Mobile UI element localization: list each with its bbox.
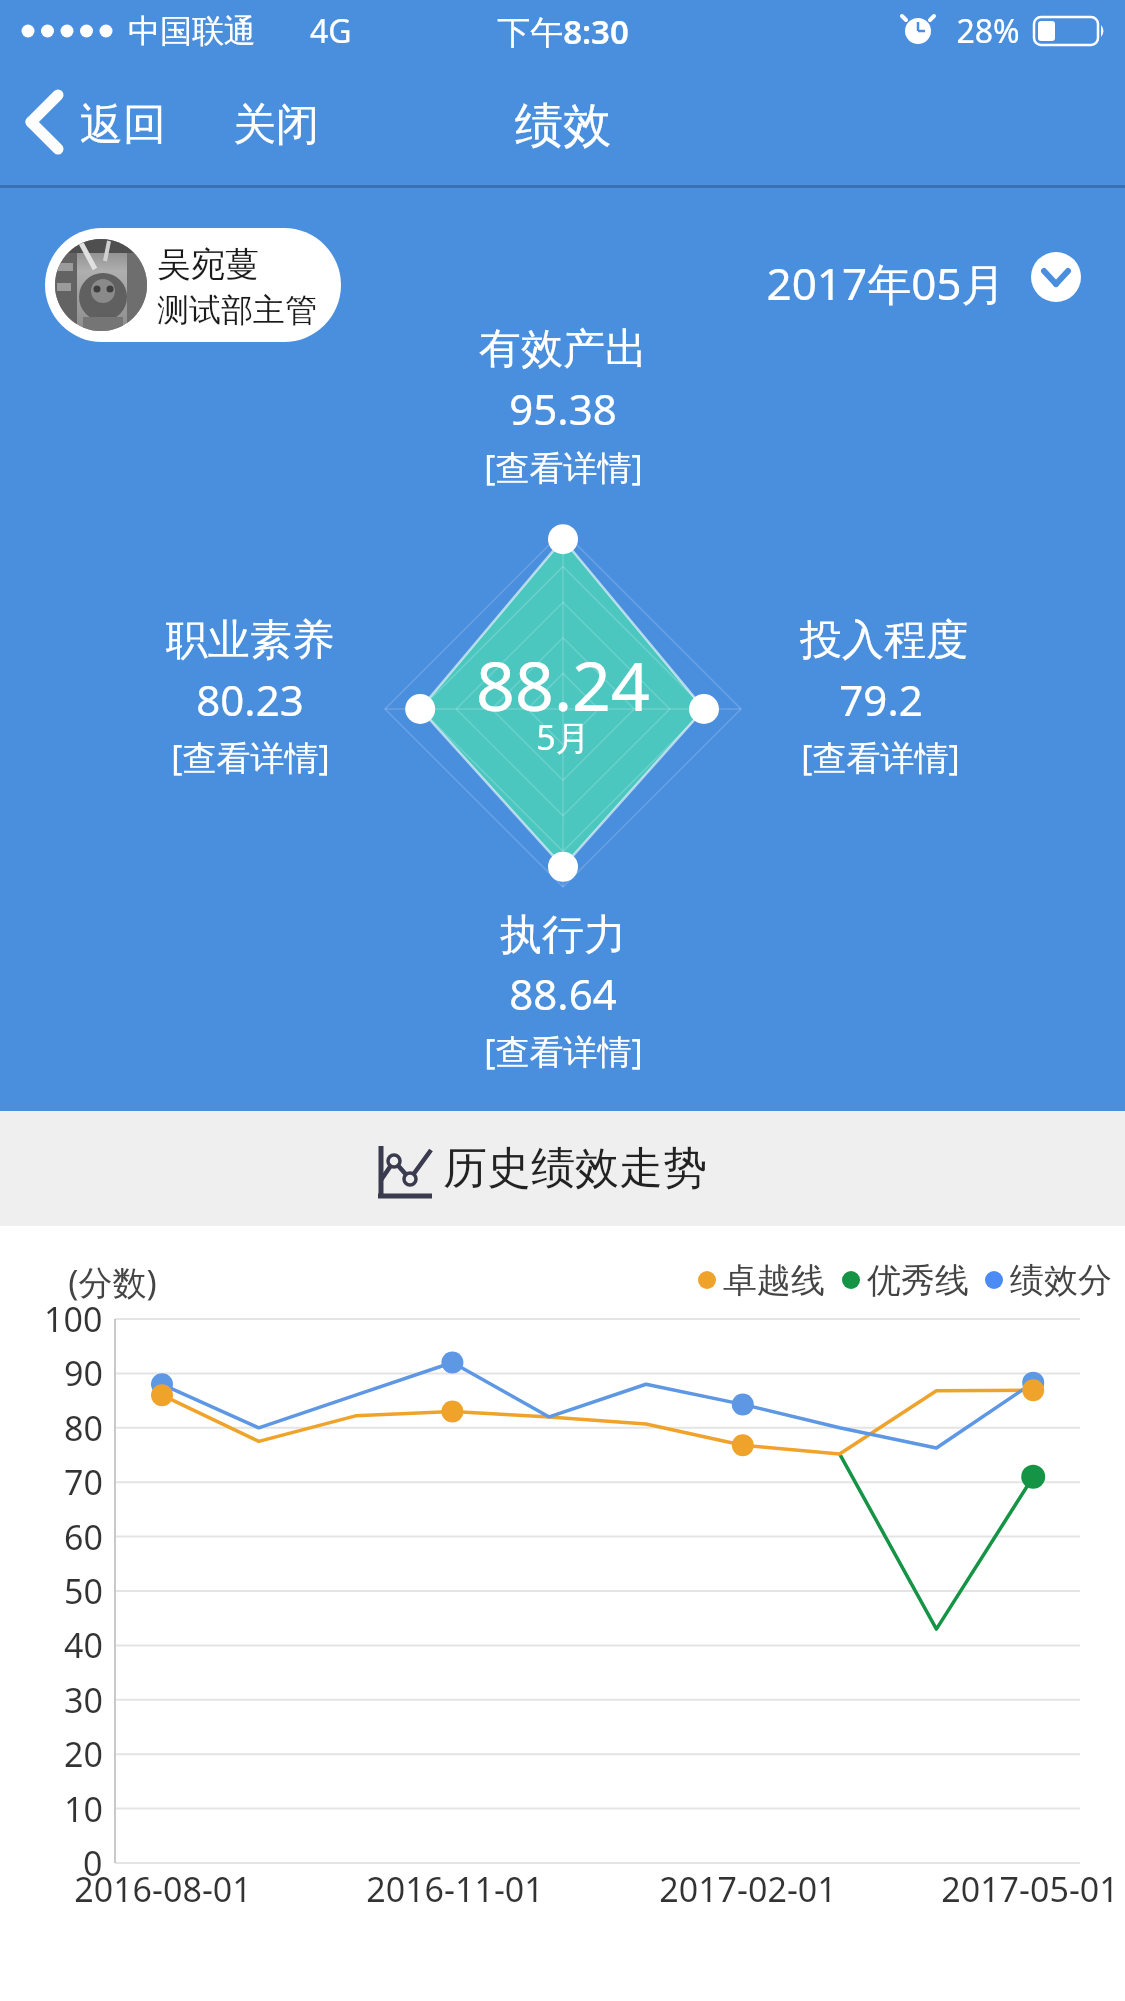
staticText: 历史绩效走势	[443, 1141, 707, 1196]
button[interactable]	[760, 240, 1100, 330]
staticText: (分数)	[68, 1259, 157, 1305]
staticText: 80	[64, 1405, 103, 1451]
staticText: 绩效分	[1010, 1259, 1112, 1302]
staticText: 88.24	[476, 638, 650, 731]
staticText: 100	[44, 1296, 103, 1342]
staticText: 70	[64, 1459, 103, 1505]
staticText: 2016-08-01	[74, 1866, 252, 1912]
staticText: 测试部主管	[157, 290, 317, 330]
staticText: 关闭	[233, 98, 319, 152]
staticText: 有效产出	[479, 323, 647, 376]
staticText: 5月	[536, 714, 590, 760]
staticText: 投入程度	[800, 614, 968, 667]
staticText: 绩效	[515, 96, 611, 156]
staticText: 吴宛蔓	[157, 243, 259, 286]
staticText: 28%	[956, 9, 1020, 53]
button[interactable]: 吴宛蔓	[45, 228, 341, 342]
staticText: [查看详情]	[484, 1028, 643, 1074]
staticText: 2017-05-01	[941, 1866, 1119, 1912]
staticText: 30	[64, 1677, 103, 1723]
staticText: 90	[64, 1350, 103, 1396]
button[interactable]: [查看详情]	[145, 730, 355, 784]
button[interactable]	[20, 90, 180, 156]
staticText: [查看详情]	[484, 444, 643, 490]
staticText: 下午8:30	[497, 9, 629, 54]
staticText: 50	[64, 1568, 103, 1614]
staticText: 10	[64, 1786, 103, 1832]
staticText: 2017年05月	[766, 253, 1006, 313]
button[interactable]: [查看详情]	[458, 440, 668, 494]
button[interactable]	[225, 90, 330, 156]
button[interactable]: [查看详情]	[458, 1024, 668, 1078]
staticText: 2017-02-01	[659, 1866, 837, 1912]
staticText: 执行力	[500, 909, 626, 962]
staticText: 中国联通	[128, 11, 256, 51]
staticText: 79.2	[839, 671, 923, 728]
staticText: 60	[64, 1514, 103, 1560]
staticText: 20	[64, 1731, 103, 1777]
staticText: 95.38	[509, 380, 617, 437]
staticText: 优秀线	[867, 1259, 969, 1302]
staticText: 2016-11-01	[366, 1866, 544, 1912]
staticText: [查看详情]	[171, 734, 330, 780]
staticText: 4G	[310, 9, 352, 53]
staticText: 卓越线	[723, 1259, 825, 1302]
staticText: 40	[64, 1622, 103, 1668]
staticText: 返回	[80, 98, 166, 152]
staticText: 88.64	[509, 965, 617, 1022]
staticText: 0	[83, 1840, 103, 1886]
button[interactable]: [查看详情]	[775, 730, 985, 784]
staticText: 职业素养	[166, 614, 334, 667]
staticText: 80.23	[196, 671, 304, 728]
staticText: [查看详情]	[801, 734, 960, 780]
